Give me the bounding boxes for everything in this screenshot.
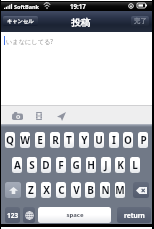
button[interactable]: C — [56, 182, 66, 198]
staticText: Y — [81, 133, 88, 147]
button[interactable]: H — [86, 157, 96, 173]
staticText: SoftBank — [14, 3, 39, 10]
staticText: 19:17 — [70, 2, 86, 10]
button[interactable]: N — [100, 182, 110, 198]
button[interactable]: Backspace — [133, 182, 149, 198]
button[interactable]: M — [115, 182, 125, 198]
staticText: キャンセル — [7, 18, 34, 25]
button[interactable]: B — [85, 182, 95, 198]
button[interactable]: Q — [5, 132, 15, 148]
button[interactable]: V — [71, 182, 81, 198]
button[interactable]: P — [138, 132, 148, 148]
staticText: Q — [6, 133, 14, 147]
staticText: G — [72, 158, 80, 172]
button[interactable]: E — [35, 132, 45, 148]
staticText: V — [73, 183, 80, 197]
staticText: space — [66, 211, 84, 219]
button[interactable]: G — [71, 157, 81, 173]
button[interactable]: Change keyboard — [23, 207, 35, 223]
button[interactable]: T — [64, 132, 74, 148]
button[interactable]: R — [50, 132, 60, 148]
staticText: Z — [28, 183, 34, 197]
staticText: C — [58, 183, 65, 197]
button[interactable]: キャンセル — [3, 16, 38, 26]
button[interactable]: Z — [26, 182, 36, 198]
staticText: U — [95, 133, 103, 147]
staticText: M — [115, 183, 125, 197]
button[interactable]: Media library — [34, 111, 44, 121]
staticText: S — [29, 158, 35, 172]
staticText: K — [117, 158, 124, 172]
staticText: E — [37, 133, 43, 147]
button[interactable]: Numbers — [5, 207, 20, 223]
button[interactable]: 完了 — [131, 16, 149, 26]
button[interactable]: I — [109, 132, 119, 148]
staticText: P — [140, 133, 147, 147]
button[interactable]: Y — [79, 132, 89, 148]
staticText: 123 — [7, 211, 19, 220]
button[interactable]: J — [101, 157, 111, 173]
button[interactable]: space — [38, 207, 111, 223]
staticText: D — [42, 158, 50, 172]
staticText: T — [66, 133, 72, 147]
staticText: O — [124, 133, 132, 147]
button[interactable]: X — [41, 182, 51, 198]
button[interactable]: S — [27, 157, 37, 173]
staticText: L — [132, 158, 138, 172]
button[interactable]: Camera — [11, 111, 23, 121]
button[interactable]: Location — [56, 111, 67, 121]
staticText: 完了 — [134, 17, 147, 25]
staticText: 投稿 — [71, 17, 90, 29]
button[interactable]: A — [12, 157, 22, 173]
button[interactable]: O — [123, 132, 133, 148]
staticText: return — [124, 211, 145, 220]
staticText: W — [20, 133, 30, 147]
staticText: A — [14, 158, 21, 172]
button[interactable]: D — [41, 157, 51, 173]
button[interactable]: F — [56, 157, 66, 173]
staticText: H — [87, 158, 95, 172]
button[interactable]: K — [115, 157, 125, 173]
staticText: N — [101, 183, 110, 197]
staticText: F — [58, 158, 64, 172]
button[interactable]: U — [94, 132, 104, 148]
button[interactable]: L — [130, 157, 140, 173]
button[interactable]: W — [20, 132, 30, 148]
button[interactable]: Return — [117, 207, 151, 223]
staticText: J — [104, 158, 108, 172]
staticText: R — [52, 133, 59, 147]
staticText: X — [43, 183, 50, 197]
staticText: B — [87, 183, 94, 197]
staticText: いまなにしてる? — [6, 37, 54, 45]
staticText: I — [112, 133, 116, 147]
button[interactable]: Shift — [5, 182, 21, 198]
